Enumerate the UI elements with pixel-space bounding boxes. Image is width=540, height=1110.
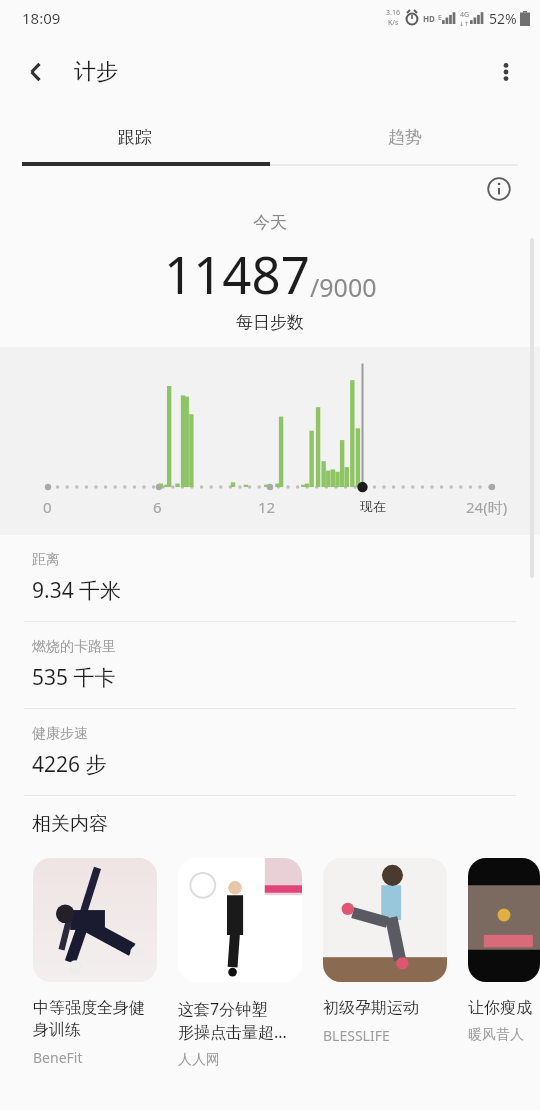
staticText: 计步 bbox=[74, 58, 118, 86]
staticText: BeneFit bbox=[33, 1048, 83, 1067]
staticText: 人人网 bbox=[178, 1051, 220, 1069]
staticText: 相关内容 bbox=[32, 812, 108, 836]
button[interactable]: 距离 bbox=[0, 535, 540, 621]
staticText: 现在 bbox=[360, 498, 386, 514]
staticText: 535 千卡 bbox=[32, 663, 116, 692]
staticText: 中等强度全身健 身训练 bbox=[33, 998, 145, 1040]
staticText: 4226 步 bbox=[32, 750, 107, 779]
staticText: 趋势 bbox=[388, 127, 422, 148]
staticText: 18:09 bbox=[22, 8, 61, 28]
staticText: 距离 bbox=[32, 551, 60, 569]
staticText: 让你瘦成 bbox=[468, 998, 532, 1018]
staticText: 今天 bbox=[253, 212, 287, 233]
staticText: HD bbox=[423, 13, 435, 24]
button[interactable]: 跟踪 bbox=[0, 108, 270, 166]
staticText: /9000 bbox=[310, 270, 377, 304]
button[interactable]: 健康步速 bbox=[0, 709, 540, 795]
staticText: E bbox=[438, 13, 442, 23]
staticText: 健康步速 bbox=[32, 725, 88, 743]
staticText: ↓↑ bbox=[459, 20, 470, 27]
staticText: 6 bbox=[153, 497, 162, 517]
staticText: 这套7分钟塑 形操点击量超... bbox=[178, 998, 287, 1043]
button[interactable]: 燃烧的卡路里 bbox=[0, 622, 540, 708]
staticText: 燃烧的卡路里 bbox=[32, 638, 116, 656]
staticText: K/s bbox=[388, 18, 399, 28]
staticText: 3.16 bbox=[386, 8, 400, 18]
staticText: 52% bbox=[489, 9, 517, 28]
staticText: BLESSLIFE bbox=[323, 1026, 390, 1045]
staticText: 初级孕期运动 bbox=[323, 998, 419, 1018]
staticText: 每日步数 bbox=[236, 312, 304, 333]
button[interactable]: 让你瘦成 bbox=[468, 858, 540, 1044]
staticText: 24(时) bbox=[466, 497, 508, 517]
staticText: 4G bbox=[460, 10, 470, 20]
button[interactable]: Information bbox=[482, 172, 516, 206]
button[interactable]: 趋势 bbox=[270, 108, 540, 166]
staticText: 11487 bbox=[164, 239, 310, 308]
button[interactable]: 这套7分钟塑 形操点击量超... bbox=[178, 858, 302, 1069]
button[interactable]: 初级孕期运动 bbox=[323, 858, 447, 1045]
button[interactable]: 中等强度全身健 身训练 bbox=[33, 858, 157, 1067]
staticText: 9.34 千米 bbox=[32, 576, 122, 605]
staticText: 跟踪 bbox=[118, 127, 152, 148]
staticText: 暖风昔人 bbox=[468, 1026, 524, 1044]
staticText: 12 bbox=[258, 497, 276, 517]
button[interactable]: Back bbox=[10, 46, 62, 98]
staticText: 0 bbox=[43, 497, 52, 517]
button[interactable]: More options bbox=[480, 46, 532, 98]
